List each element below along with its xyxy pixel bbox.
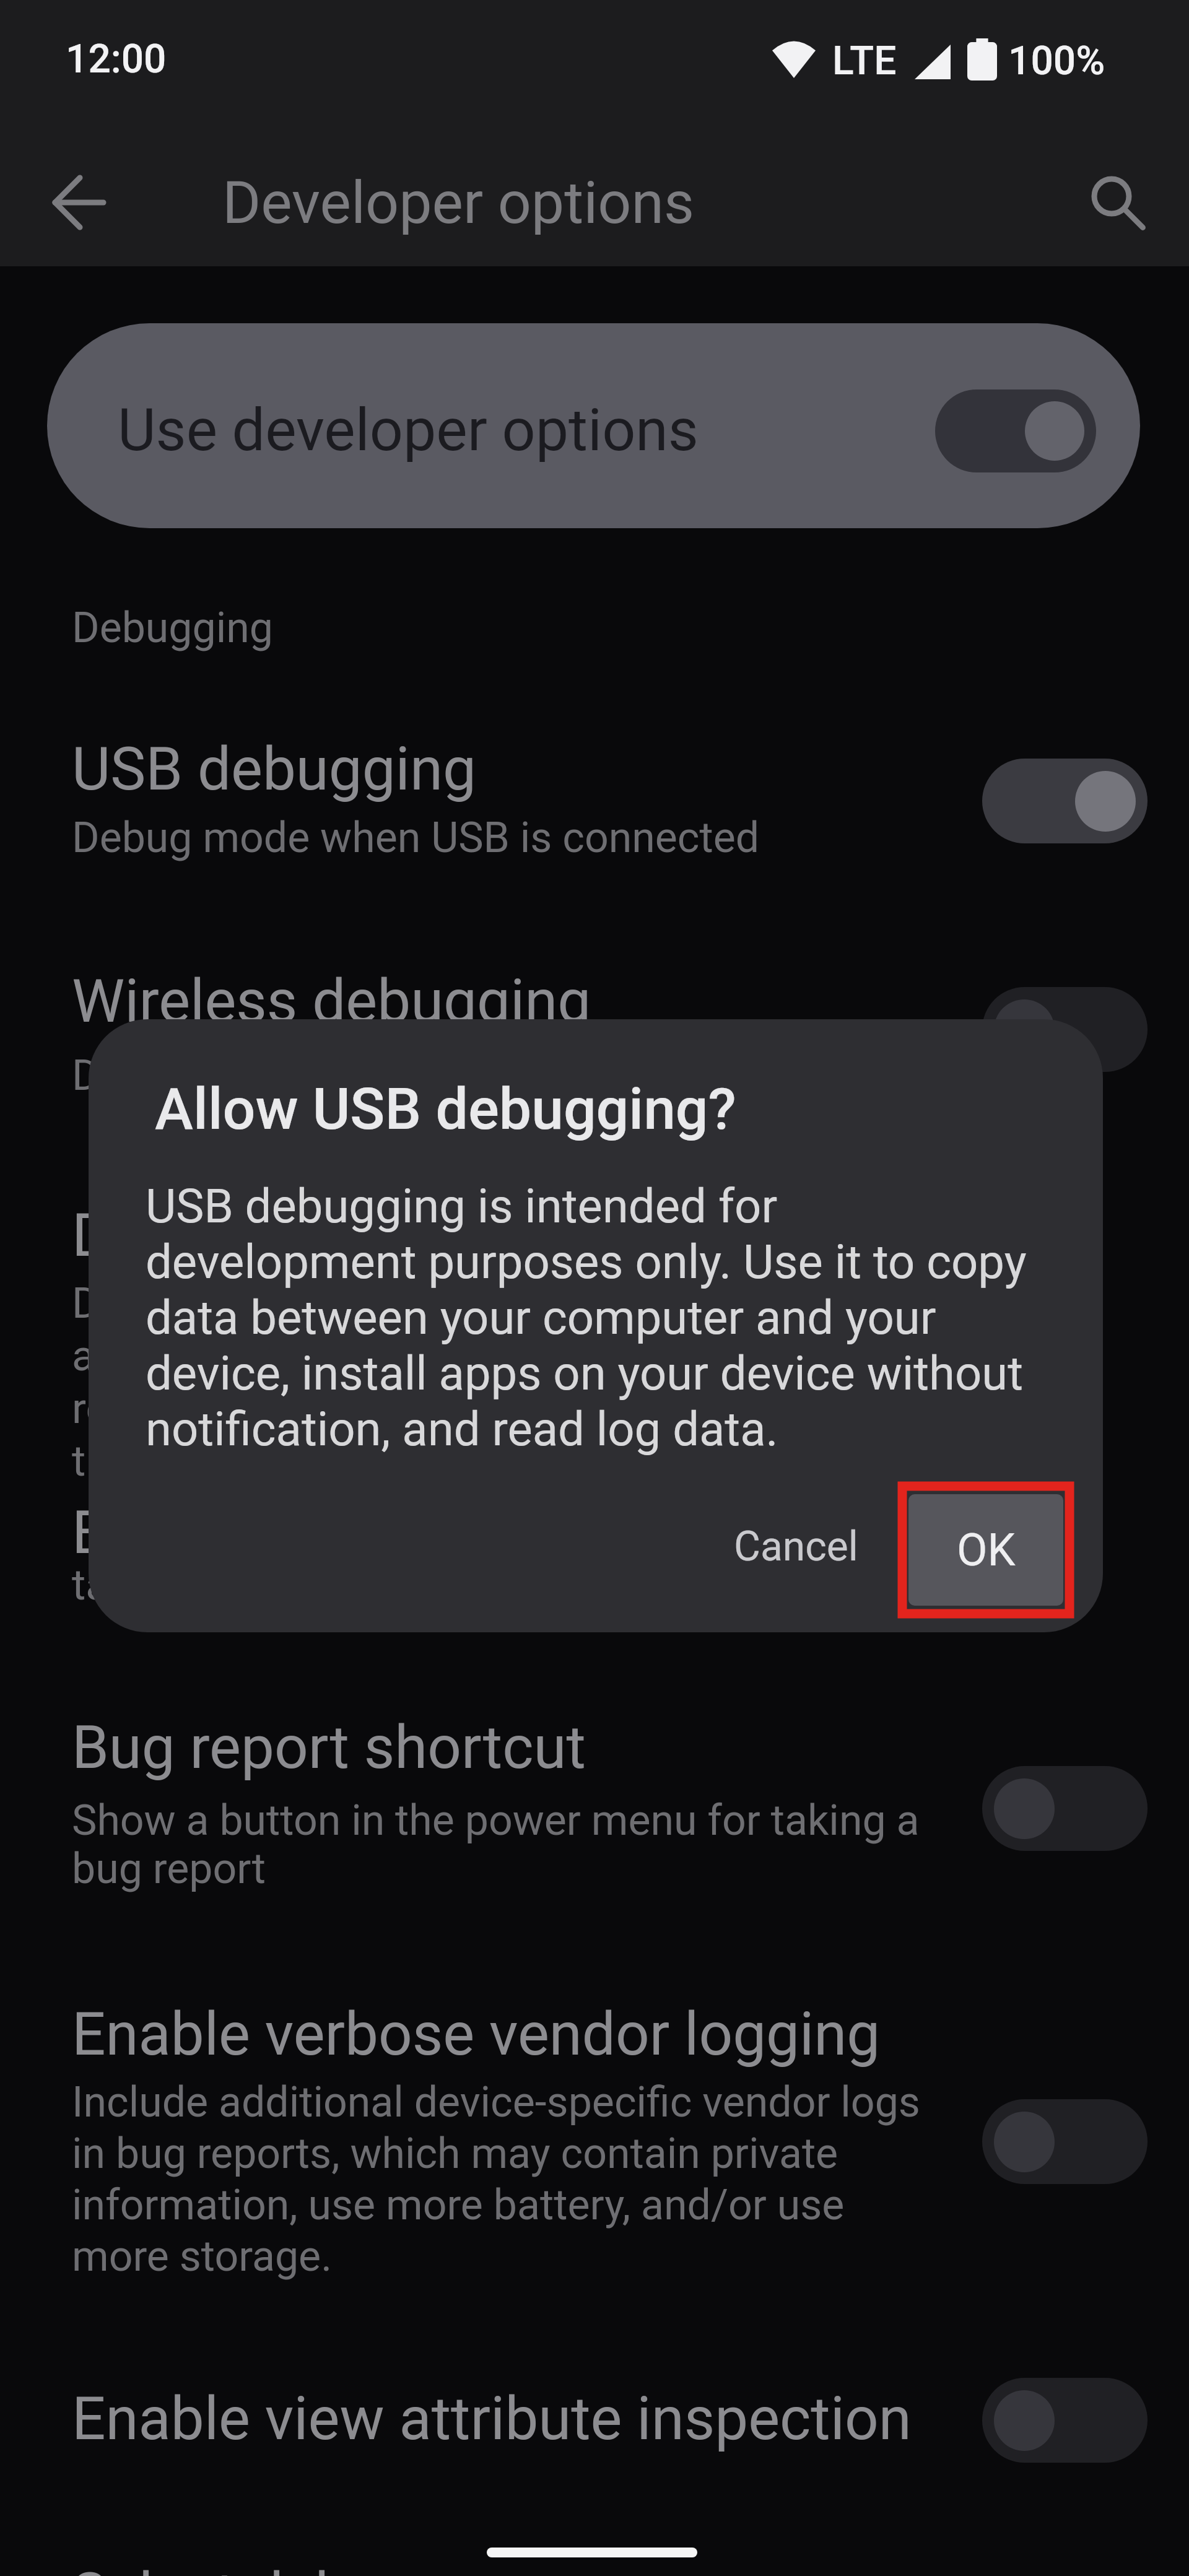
staticText: tap to take a bug report bbox=[72, 1560, 508, 1610]
staticText: Use developer options bbox=[118, 396, 699, 464]
staticText: Debug mode when Wi-Fi is connected bbox=[72, 1051, 774, 1100]
staticText: USB debugging is intended for bbox=[146, 1178, 778, 1234]
button[interactable] bbox=[0, 1982, 1189, 2304]
staticText: LTE bbox=[832, 38, 897, 84]
button[interactable] bbox=[1081, 168, 1155, 237]
staticText: Developer options bbox=[222, 168, 695, 237]
button[interactable]: Cancel bbox=[700, 1499, 892, 1595]
staticText: Debug mode when USB is connected bbox=[72, 813, 760, 863]
button[interactable] bbox=[935, 389, 1096, 472]
button[interactable]: OK bbox=[908, 1494, 1063, 1606]
staticText: authorizations for systems that have not bbox=[72, 1331, 827, 1381]
staticText: more storage. bbox=[72, 2232, 333, 2281]
staticText: Enable view attribute inspection bbox=[72, 2384, 912, 2454]
staticText: Wireless debugging bbox=[72, 967, 591, 1037]
staticText: data between your computer and your bbox=[146, 1290, 936, 1345]
staticText: in bug reports, which may contain privat… bbox=[72, 2129, 838, 2178]
staticText: Disables the automatic revocation of adb bbox=[72, 1279, 838, 1328]
staticText: bug report bbox=[72, 1844, 266, 1894]
staticText: 100% bbox=[1008, 38, 1105, 84]
button[interactable] bbox=[0, 718, 1189, 885]
button[interactable] bbox=[34, 168, 115, 237]
button[interactable] bbox=[982, 1766, 1148, 1851]
staticText: Allow USB debugging? bbox=[155, 1076, 736, 1143]
button[interactable] bbox=[0, 954, 1189, 1102]
button[interactable] bbox=[0, 2347, 1189, 2495]
staticText: OK bbox=[957, 1524, 1016, 1576]
button[interactable] bbox=[982, 987, 1148, 1072]
button[interactable] bbox=[982, 2378, 1148, 2463]
staticText: time bbox=[72, 1437, 155, 1486]
staticText: Enable verbose vendor logging bbox=[72, 1999, 881, 2069]
button[interactable]: Use developer options bbox=[47, 323, 1140, 528]
staticText: USB debugging bbox=[72, 734, 476, 804]
staticText: Show a button in the power menu for taki… bbox=[72, 1796, 920, 1845]
staticText: Disable adb authorization timeout bbox=[72, 1201, 964, 1271]
staticText: Debugging bbox=[72, 603, 273, 653]
staticText: Cancel bbox=[734, 1523, 858, 1570]
staticText: reconnected within the default amount of bbox=[72, 1384, 843, 1434]
staticText: Include additional device-specific vendo… bbox=[72, 2078, 920, 2127]
staticText: 12:00 bbox=[66, 36, 167, 82]
staticText: Select debug app bbox=[72, 2560, 529, 2576]
button[interactable] bbox=[982, 759, 1148, 843]
staticText: information, use more battery, and/or us… bbox=[72, 2180, 845, 2230]
staticText: Bug report bbox=[72, 1498, 349, 1568]
staticText: device, install apps on your device with… bbox=[146, 1346, 1024, 1401]
button[interactable] bbox=[982, 2099, 1148, 2184]
staticText: notification, and read log data. bbox=[146, 1401, 778, 1456]
staticText: Bug report shortcut bbox=[72, 1713, 586, 1783]
staticText: development purposes only. Use it to cop… bbox=[146, 1234, 1027, 1289]
button[interactable] bbox=[0, 1697, 1189, 1907]
